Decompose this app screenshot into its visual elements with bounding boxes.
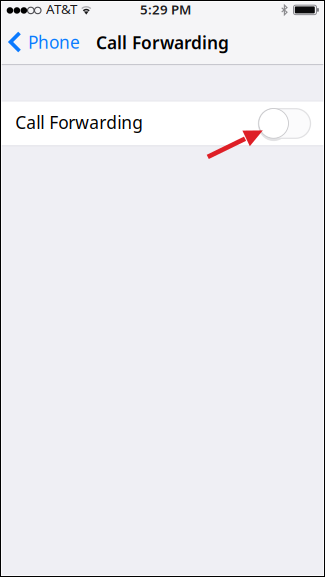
- staticText: Call Forwarding: [15, 111, 143, 134]
- button[interactable]: Phone: [0, 22, 90, 65]
- staticText: Phone: [28, 30, 80, 53]
- button[interactable]: Call Forwarding: [258, 108, 310, 139]
- staticText: Call Forwarding: [96, 31, 229, 54]
- staticText: AT&T: [46, 0, 77, 18]
- staticText: 5:29 PM: [140, 0, 191, 18]
